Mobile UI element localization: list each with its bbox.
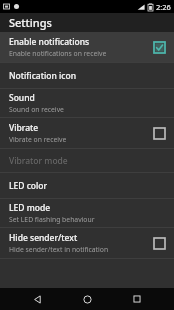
button[interactable]: Vibrator mode	[0, 149, 174, 172]
button[interactable]	[149, 233, 169, 253]
staticText: Vibrate	[9, 122, 39, 134]
button[interactable]: Sound	[0, 89, 174, 117]
staticText: Notification icon	[9, 70, 76, 82]
button[interactable]: LED mode	[0, 199, 174, 227]
staticText: Enable notifications	[9, 36, 90, 48]
button[interactable]: Vibrate	[0, 118, 174, 148]
staticText: LED color	[9, 180, 48, 192]
staticText: Set LED flashing behaviour	[9, 215, 95, 224]
button[interactable]: Notification icon	[0, 63, 174, 88]
button[interactable]: Back	[24, 288, 50, 310]
staticText: Hide sender/text	[9, 232, 78, 244]
button[interactable]: Home	[74, 288, 100, 310]
staticText: Settings	[9, 15, 52, 30]
staticText: Vibrator mode	[9, 155, 68, 167]
staticText: LED mode	[9, 202, 51, 214]
button[interactable]: Enable notifications	[0, 32, 174, 62]
button[interactable]: LED color	[0, 173, 174, 198]
staticText: Sound	[9, 92, 35, 104]
button[interactable]: Recents	[124, 288, 150, 310]
staticText: 2:26	[156, 2, 171, 12]
staticText: Sound on receive	[9, 105, 64, 114]
button[interactable]	[149, 123, 169, 143]
button[interactable]	[149, 37, 169, 57]
staticText: Vibrate on receive	[9, 135, 67, 144]
staticText: Hide sender/text in notification	[9, 245, 109, 254]
button[interactable]: Hide sender/text	[0, 228, 174, 258]
staticText: Enable notifications on receive	[9, 49, 107, 58]
